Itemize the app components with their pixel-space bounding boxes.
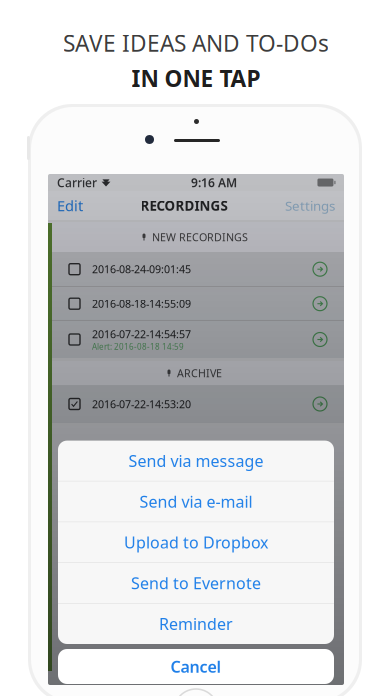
staticText: Cancel [170,656,221,677]
button[interactable]: Send via e-mail [58,481,334,522]
staticText: 9:16 AM [191,174,237,190]
button[interactable]: Cancel [58,649,334,684]
button[interactable]: Settings [282,191,338,220]
staticText: 2016-08-24-09:01:45 [92,262,191,276]
button[interactable]: 2016-08-18-14:55:09 [48,287,344,320]
staticText: ARCHIVE [177,366,222,380]
button[interactable]: Edit [54,190,86,221]
button[interactable]: Send via message [58,441,334,481]
staticText: Edit [57,196,83,215]
staticText: 2016-07-22-14:54:57 [92,327,191,341]
staticText: Reminder [159,613,233,634]
button[interactable]: 2016-07-22-14:53:20 [48,385,344,423]
staticText: Send via e-mail [139,491,252,512]
staticText: 2016-08-18-14:55:09 [92,297,191,311]
staticText: RECORDINGS [140,197,227,214]
staticText: Send to Evernote [131,572,261,594]
staticText: Send via message [128,450,263,471]
button[interactable]: 2016-07-22-14:54:57 [48,321,344,358]
staticText: Upload to Dropbox [124,532,268,553]
button[interactable]: Reminder [58,604,334,644]
staticText: Settings [285,197,335,214]
staticText: Alert: 2016-08-18 14:59 [92,341,184,352]
staticText: NEW RECORDINGS [152,230,248,244]
staticText: SAVE IDEAS AND TO-DOs [63,28,329,58]
staticText: IN ONE TAP [131,63,260,93]
button[interactable]: Send to Evernote [58,563,334,603]
button[interactable]: Upload to Dropbox [58,522,334,562]
button[interactable]: 2016-08-24-09:01:45 [48,252,344,286]
staticText: Carrier [57,174,97,190]
staticText: 2016-07-22-14:53:20 [92,397,191,411]
